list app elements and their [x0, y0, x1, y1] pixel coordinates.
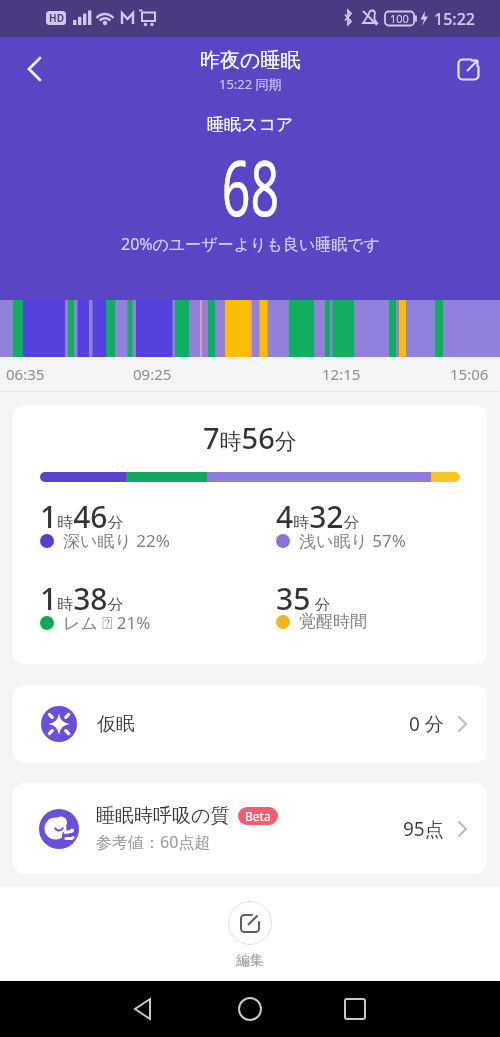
button[interactable] [228, 901, 272, 945]
staticText: 参考値：60点超 [96, 831, 211, 853]
staticText: 0 分 [409, 711, 444, 737]
button[interactable] [119, 985, 167, 1033]
button[interactable]: 仮眠 [13, 685, 487, 763]
staticText: 20%のユーザーよりも良い睡眠です [121, 233, 380, 255]
staticText: 35 分 [276, 578, 331, 611]
staticText: 1時38分 [40, 578, 124, 611]
button[interactable] [331, 985, 379, 1033]
staticText: 12:15 [322, 364, 361, 384]
staticText: 1時46分 [40, 496, 124, 529]
staticText: 09:25 [133, 364, 172, 384]
staticText: 06:35 [6, 364, 45, 384]
staticText: 68 [222, 135, 279, 239]
staticText: 昨夜の睡眠 [200, 48, 301, 73]
staticText: HD [49, 11, 64, 25]
button[interactable] [226, 985, 274, 1033]
staticText: レム ⍰ 21% [63, 611, 151, 634]
button[interactable] [12, 45, 60, 93]
staticText: 15:22 同期 [219, 75, 282, 93]
staticText: 95点 [403, 816, 444, 842]
staticText: 浅い眠り 57% [299, 529, 406, 552]
staticText: 15:22 [434, 8, 475, 30]
staticText: Beta [245, 808, 271, 824]
button[interactable] [444, 45, 492, 93]
staticText: 睡眠スコア [207, 114, 294, 135]
staticText: 睡眠時呼吸の質 [96, 804, 230, 828]
staticText: 100 [390, 11, 409, 26]
staticText: 編集 [236, 952, 264, 970]
staticText: 深い眠り 22% [63, 529, 170, 552]
button[interactable]: 睡眠時呼吸の質 [13, 783, 487, 874]
staticText: 15:06 [450, 364, 489, 384]
staticText: 仮眠 [97, 712, 135, 736]
staticText: 7時56分 [203, 418, 297, 457]
staticText: 4時32分 [276, 496, 360, 529]
staticText: 覚醒時間 [299, 611, 367, 632]
